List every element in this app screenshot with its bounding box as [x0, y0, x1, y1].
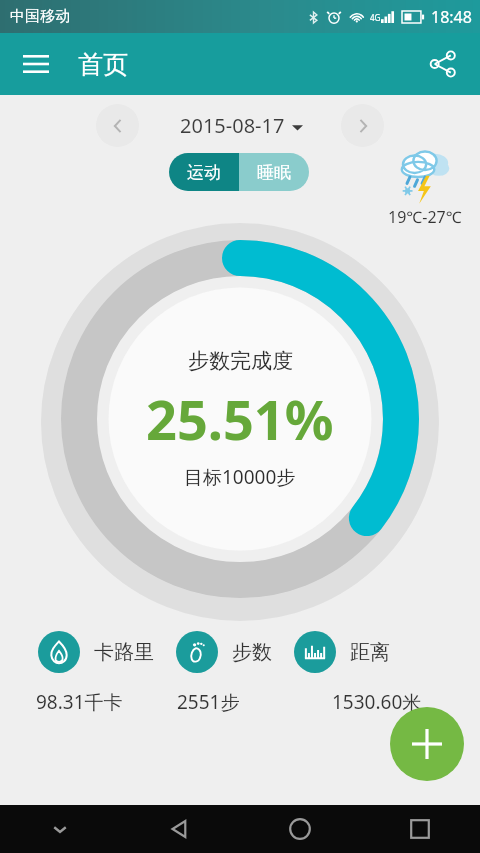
button[interactable]: Recent apps	[360, 805, 480, 853]
staticText: 睡眠	[257, 162, 291, 183]
staticText: 距离	[350, 640, 390, 665]
staticText: 2015-08-17	[180, 112, 285, 139]
button[interactable]: Next day	[341, 104, 384, 147]
button[interactable]: Previous day	[96, 104, 139, 147]
button[interactable]: Menu	[14, 42, 58, 86]
staticText: 98.31千卡	[36, 689, 123, 715]
button[interactable]: Back	[120, 805, 240, 853]
staticText: 18:48	[431, 6, 472, 28]
staticText: 2551步	[177, 689, 240, 715]
button[interactable]: 卡路里	[38, 631, 154, 673]
button[interactable]: 睡眠	[239, 153, 309, 191]
staticText: 步数	[232, 640, 272, 665]
staticText: 中国移动	[10, 7, 70, 26]
staticText: 25.51%	[146, 382, 334, 456]
staticText: 目标10000步	[184, 464, 296, 490]
staticText: 1530.60米	[332, 689, 422, 715]
staticText: 首页	[78, 49, 128, 80]
button[interactable]: Add	[390, 707, 464, 781]
button[interactable]: Share	[420, 41, 466, 87]
staticText: 运动	[187, 162, 221, 183]
button[interactable]: 距离	[294, 631, 390, 673]
staticText: 4G	[370, 12, 381, 23]
staticText: 卡路里	[94, 640, 154, 665]
button[interactable]: Home	[240, 805, 360, 853]
button[interactable]: 运动	[169, 153, 239, 191]
staticText: 19℃-27℃	[388, 206, 462, 226]
button[interactable]: Hide navigation	[0, 805, 120, 853]
staticText: 步数完成度	[188, 348, 293, 374]
button[interactable]: 步数	[176, 631, 272, 673]
